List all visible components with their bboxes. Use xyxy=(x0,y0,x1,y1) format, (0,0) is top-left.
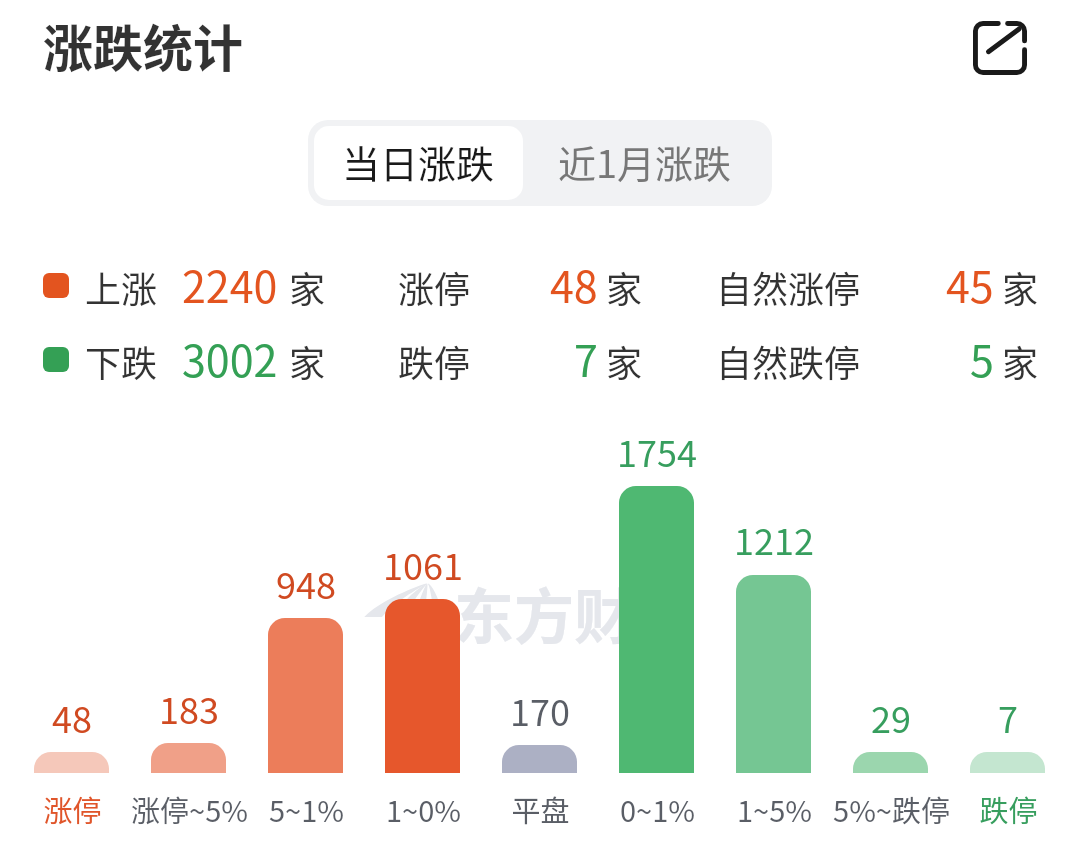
staticText: 5~1% xyxy=(269,788,344,830)
staticText: 当日涨跌 xyxy=(342,134,495,189)
staticText: 自然跌停 xyxy=(716,335,861,387)
staticText: 家 xyxy=(606,335,643,387)
staticText: 170 xyxy=(510,684,570,736)
button[interactable]: 当日涨跌 xyxy=(314,126,523,200)
staticText: 45 xyxy=(946,253,994,315)
staticText: 7 xyxy=(574,327,598,389)
staticText: 涨跌统计 xyxy=(43,9,243,81)
staticText: 48 xyxy=(550,253,598,315)
staticText: 7 xyxy=(998,691,1018,743)
staticText: 自然涨停 xyxy=(716,261,861,313)
staticText: 跌停 xyxy=(398,335,471,387)
staticText: 下跌 xyxy=(85,335,158,387)
staticText: 29 xyxy=(871,691,911,743)
staticText: 2240 xyxy=(182,253,278,315)
staticText: 东方财富 xyxy=(454,569,694,656)
staticText: 跌停 xyxy=(979,788,1038,830)
staticText: 1212 xyxy=(734,513,814,565)
staticText: 平盘 xyxy=(511,788,570,830)
staticText: 近1月涨跌 xyxy=(558,134,732,189)
staticText: 涨停 xyxy=(43,788,102,830)
staticText: 家 xyxy=(1002,261,1039,313)
staticText: 涨停~5% xyxy=(131,788,248,830)
staticText: 1~0% xyxy=(386,788,461,830)
button[interactable]: 在新页面打开 xyxy=(956,5,1043,91)
staticText: 5%~跌停 xyxy=(833,788,950,830)
staticText: 183 xyxy=(159,682,219,734)
staticText: 家 xyxy=(1002,335,1039,387)
staticText: 家 xyxy=(606,261,643,313)
staticText: 家 xyxy=(289,335,326,387)
staticText: 948 xyxy=(276,557,336,609)
staticText: 48 xyxy=(52,691,92,743)
staticText: 上涨 xyxy=(85,261,158,313)
staticText: 1754 xyxy=(617,425,697,477)
staticText: 涨停 xyxy=(398,261,471,313)
staticText: 家 xyxy=(289,261,326,313)
staticText: 5 xyxy=(970,327,994,389)
staticText: 3002 xyxy=(182,327,278,389)
staticText: 1~5% xyxy=(737,788,812,830)
staticText: 1061 xyxy=(383,538,463,590)
staticText: 0~1% xyxy=(620,788,695,830)
button[interactable]: 近1月涨跌 xyxy=(523,126,766,200)
